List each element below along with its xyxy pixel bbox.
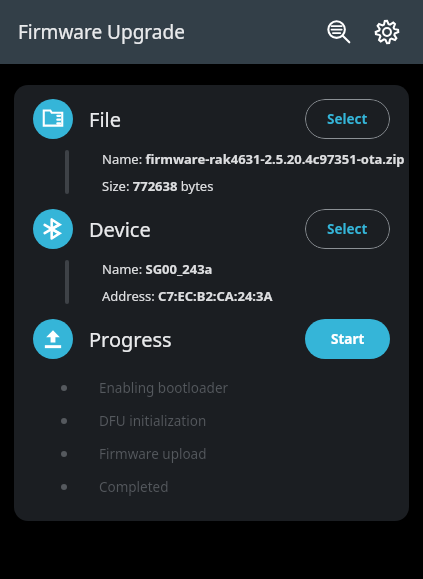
staticText: Address: C7:EC:B2:CA:24:3A	[102, 287, 273, 305]
button[interactable]: Settings	[365, 10, 409, 54]
staticText: Enabling bootloader	[99, 379, 229, 397]
staticText: Name: SG00_243a	[102, 260, 213, 278]
button[interactable]: Progress	[33, 319, 73, 359]
staticText: Device	[89, 216, 151, 243]
staticText: Completed	[99, 478, 169, 496]
staticText: Firmware upload	[99, 445, 207, 463]
button[interactable]: Select	[305, 209, 390, 249]
button[interactable]: File	[33, 99, 73, 139]
staticText: Select	[327, 220, 368, 238]
staticText: DFU initialization	[99, 412, 207, 430]
staticText: Name: firmware-rak4631-2.5.20.4c97351-ot…	[102, 150, 405, 168]
staticText: Select	[327, 110, 368, 128]
button[interactable]: Start	[305, 319, 390, 359]
staticText: File	[89, 106, 121, 133]
button[interactable]: Search	[317, 10, 361, 54]
button[interactable]: Select	[305, 99, 390, 139]
staticText: Progress	[89, 326, 172, 353]
staticText: Firmware Upgrade	[18, 19, 185, 45]
staticText: Size: 772638 bytes	[102, 177, 214, 195]
button[interactable]: Device	[33, 209, 73, 249]
staticText: Start	[331, 330, 365, 348]
